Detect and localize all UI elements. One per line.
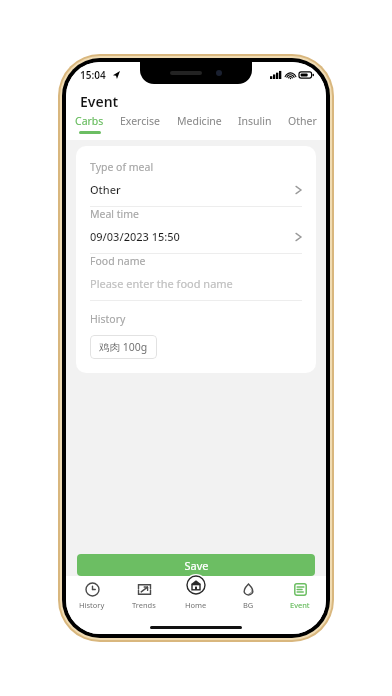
- staticText: Trends: [132, 600, 156, 610]
- staticText: Exercise: [120, 114, 160, 128]
- staticText: Other: [288, 114, 317, 128]
- staticText: Please enter the food name: [90, 276, 302, 291]
- staticText: Medicine: [177, 114, 222, 128]
- staticText: History: [90, 312, 126, 326]
- staticText: Save: [184, 558, 209, 573]
- button[interactable]: Exercise: [118, 114, 162, 131]
- button[interactable]: Event: [274, 576, 326, 620]
- button[interactable]: Blood glucose: [222, 576, 274, 620]
- staticText: 鸡肉 100g: [99, 340, 148, 354]
- button[interactable]: Type of meal: [90, 160, 302, 206]
- staticText: 09/03/2023 15:50: [90, 229, 295, 244]
- staticText: Home: [185, 600, 207, 610]
- button[interactable]: Trends: [118, 576, 170, 620]
- button[interactable]: History: [66, 576, 118, 620]
- other: Trends: [137, 582, 152, 597]
- other: Event: [293, 582, 308, 597]
- button[interactable]: Home: [170, 576, 222, 620]
- staticText: Other: [90, 182, 295, 197]
- staticText: Insulin: [238, 114, 272, 128]
- button[interactable]: Carbs: [73, 114, 106, 134]
- button[interactable]: Insulin: [236, 114, 274, 131]
- staticText: History: [79, 600, 105, 610]
- button[interactable]: Medicine: [175, 114, 224, 131]
- staticText: Carbs: [75, 114, 104, 128]
- staticText: BG: [243, 600, 254, 610]
- button[interactable]: Meal time: [90, 207, 302, 253]
- staticText: Meal time: [90, 207, 140, 221]
- staticText: Type of meal: [90, 160, 154, 174]
- staticText: Food name: [90, 254, 146, 268]
- staticText: 15:04: [80, 68, 106, 82]
- other: History: [85, 582, 100, 597]
- other: Blood glucose: [241, 582, 256, 597]
- button[interactable]: Other: [286, 114, 319, 131]
- button[interactable]: Food name: [90, 254, 302, 300]
- staticText: Event: [80, 92, 119, 111]
- button[interactable]: 鸡肉 100g: [90, 335, 157, 359]
- staticText: Event: [290, 600, 310, 610]
- button[interactable]: Save: [77, 554, 315, 576]
